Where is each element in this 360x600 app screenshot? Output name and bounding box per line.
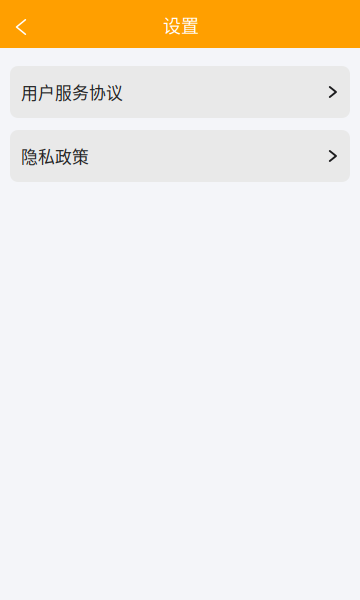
button[interactable]: Back xyxy=(0,0,42,48)
button[interactable]: 用户服务协议 xyxy=(10,66,350,118)
button[interactable]: 隐私政策 xyxy=(10,130,350,182)
staticText: 用户服务协议 xyxy=(21,80,123,104)
staticText: 隐私政策 xyxy=(21,144,89,168)
staticText: 设置 xyxy=(163,12,199,38)
